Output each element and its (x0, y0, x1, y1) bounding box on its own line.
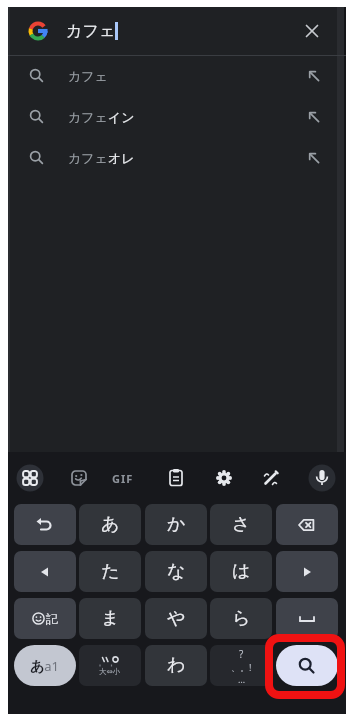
staticText: か (167, 513, 186, 536)
staticText: ? (239, 647, 244, 661)
button[interactable]: ら (210, 598, 272, 639)
button[interactable]: カフェ (8, 7, 346, 55)
button[interactable] (276, 645, 338, 686)
staticText: 、。! (231, 661, 252, 673)
staticText: わ (167, 654, 186, 677)
staticText: カフェオレ (68, 150, 135, 166)
button[interactable] (276, 598, 338, 639)
staticText: GIF (112, 471, 134, 486)
button[interactable]: カフェオレ (8, 137, 346, 178)
staticText: カフェ (66, 21, 116, 41)
button[interactable]: カフェ (8, 55, 346, 96)
staticText: や (167, 607, 186, 630)
button[interactable] (276, 551, 338, 592)
staticText: あ (101, 513, 120, 536)
button[interactable]: さ (210, 504, 272, 545)
button[interactable] (14, 504, 76, 545)
staticText: ま (101, 607, 120, 630)
staticText: 大⇔小 (99, 667, 121, 676)
button[interactable]: あa1 (14, 645, 76, 686)
button[interactable]: 記 (14, 598, 76, 639)
staticText: 記 (46, 611, 58, 626)
button[interactable]: カフェイン (8, 96, 346, 137)
button[interactable]: か (145, 504, 207, 545)
button[interactable]: あ (79, 504, 141, 545)
staticText: あa1 (30, 657, 60, 675)
staticText: は (232, 560, 251, 583)
button[interactable]: た (79, 551, 141, 592)
button[interactable]: ま (79, 598, 141, 639)
button[interactable]: は (210, 551, 272, 592)
staticText: … (238, 673, 246, 685)
button[interactable] (276, 504, 338, 545)
button[interactable]: わ (145, 645, 207, 686)
button[interactable] (14, 551, 76, 592)
staticText: な (167, 560, 186, 583)
button[interactable]: ? (210, 645, 272, 686)
button[interactable]: や (145, 598, 207, 639)
staticText: カフェ (68, 68, 108, 84)
button[interactable]: な (145, 551, 207, 592)
staticText: た (101, 560, 120, 583)
button[interactable]: 大⇔小 (79, 645, 141, 686)
staticText: さ (232, 513, 251, 536)
staticText: カフェイン (68, 109, 135, 125)
staticText: ら (232, 607, 251, 630)
